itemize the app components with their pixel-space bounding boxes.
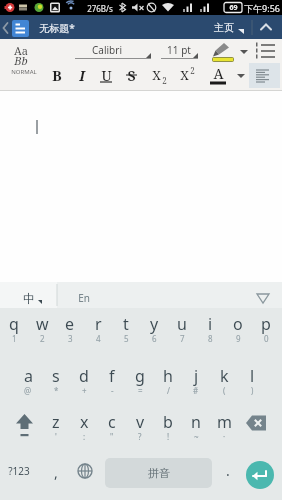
button[interactable]: l [238,358,266,402]
button[interactable] [252,39,280,63]
button[interactable]: 拼音 [105,458,212,488]
staticText: c [108,411,116,433]
button[interactable]: X [146,63,172,87]
button[interactable]: x [70,404,98,448]
staticText: Calibri [92,43,122,57]
staticText: 下午9:56 [244,2,280,14]
staticText: B [52,66,62,85]
button[interactable]: g [126,358,154,402]
button[interactable] [236,39,252,63]
button[interactable] [242,411,276,439]
staticText: i [208,313,213,335]
button[interactable] [249,63,280,88]
staticText: - [111,385,114,396]
button[interactable] [6,408,42,442]
button[interactable]: i [196,306,224,350]
staticText: * [54,385,59,396]
button[interactable] [230,65,248,87]
staticText: : [83,431,86,442]
button[interactable]: En [44,285,124,311]
staticText: 5 [124,333,129,344]
button[interactable] [0,282,57,308]
staticText: Bb [14,53,28,67]
button[interactable]: v [126,404,154,448]
staticText: 11 pt [167,43,191,57]
staticText: t [123,313,129,335]
button[interactable]: I [42,62,122,88]
button[interactable]: z [42,404,70,448]
staticText: s [52,365,60,387]
button[interactable]: B [17,62,97,88]
button[interactable]: h [154,358,182,402]
staticText: En [78,291,90,305]
button[interactable]: a [14,358,42,402]
staticText: 69 [229,3,238,13]
staticText: 6 [152,333,157,344]
button[interactable]: c [98,404,126,448]
staticText: 7 [180,333,185,344]
button[interactable]: s [42,358,70,402]
button[interactable]: d [70,358,98,402]
staticText: NORMAL [11,68,37,76]
staticText: p [261,313,271,335]
staticText: v [136,411,145,433]
staticText: 2 [162,75,167,85]
staticText: ( [223,385,226,396]
button[interactable] [12,20,29,37]
button[interactable]: ?123 [0,456,39,486]
button[interactable]: u [168,306,196,350]
staticText: X [152,66,161,84]
button[interactable]: A [178,60,258,86]
staticText: 8 [208,333,213,344]
staticText: 3 [68,333,73,344]
staticText: @ [24,385,32,396]
button[interactable]: o [224,306,252,350]
staticText: o [233,313,243,335]
staticText: r [95,313,102,335]
button[interactable]: p [252,306,280,350]
button[interactable] [206,39,236,63]
staticText: ' [55,431,57,442]
staticText: 主页 [214,21,234,34]
button[interactable]: r [84,306,112,350]
staticText: y [150,313,159,335]
staticText: k [220,365,229,387]
staticText: 2 [190,65,195,75]
button[interactable]: 主页 [184,16,264,38]
button[interactable]: j [182,358,210,402]
button[interactable]: , [45,459,67,485]
staticText: # [193,385,199,396]
staticText: 2 [40,333,45,344]
staticText: x [80,411,89,433]
button[interactable]: U [66,62,146,88]
staticText: f [109,365,115,387]
button[interactable]: y [140,306,168,350]
staticText: u [177,313,187,335]
button[interactable]: b [154,404,182,448]
staticText: g [135,365,145,387]
staticText: A [213,64,224,83]
button[interactable]: t [112,306,140,350]
button[interactable] [256,15,282,39]
button[interactable]: w [28,306,56,350]
staticText: 0 [264,333,269,344]
button[interactable] [72,458,98,484]
button[interactable]: n [182,404,210,448]
button[interactable]: q [0,306,28,350]
button[interactable]: f [98,358,126,402]
staticText: e [65,313,75,335]
button[interactable]: Calibri [67,37,147,63]
button[interactable]: Aa [0,39,46,90]
staticText: ?123 [8,464,30,478]
button[interactable]: 11 pt [139,37,219,63]
button[interactable]: X [174,63,200,87]
staticText: U [101,66,112,85]
button[interactable]: S [91,62,171,88]
button[interactable]: . [217,457,239,483]
staticText: ? [138,431,142,442]
button[interactable] [246,461,274,489]
button[interactable]: k [210,358,238,402]
button[interactable]: e [56,306,84,350]
button[interactable]: m [210,404,238,448]
staticText: . [226,461,230,480]
